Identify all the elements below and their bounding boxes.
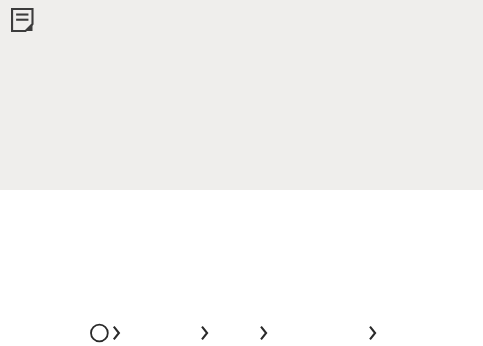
button[interactable]: More [252,322,274,344]
button[interactable]: Note [8,6,36,34]
button[interactable]: More [193,322,215,344]
button[interactable]: Next [89,322,125,344]
button[interactable] [0,0,483,190]
button[interactable]: More [361,322,383,344]
